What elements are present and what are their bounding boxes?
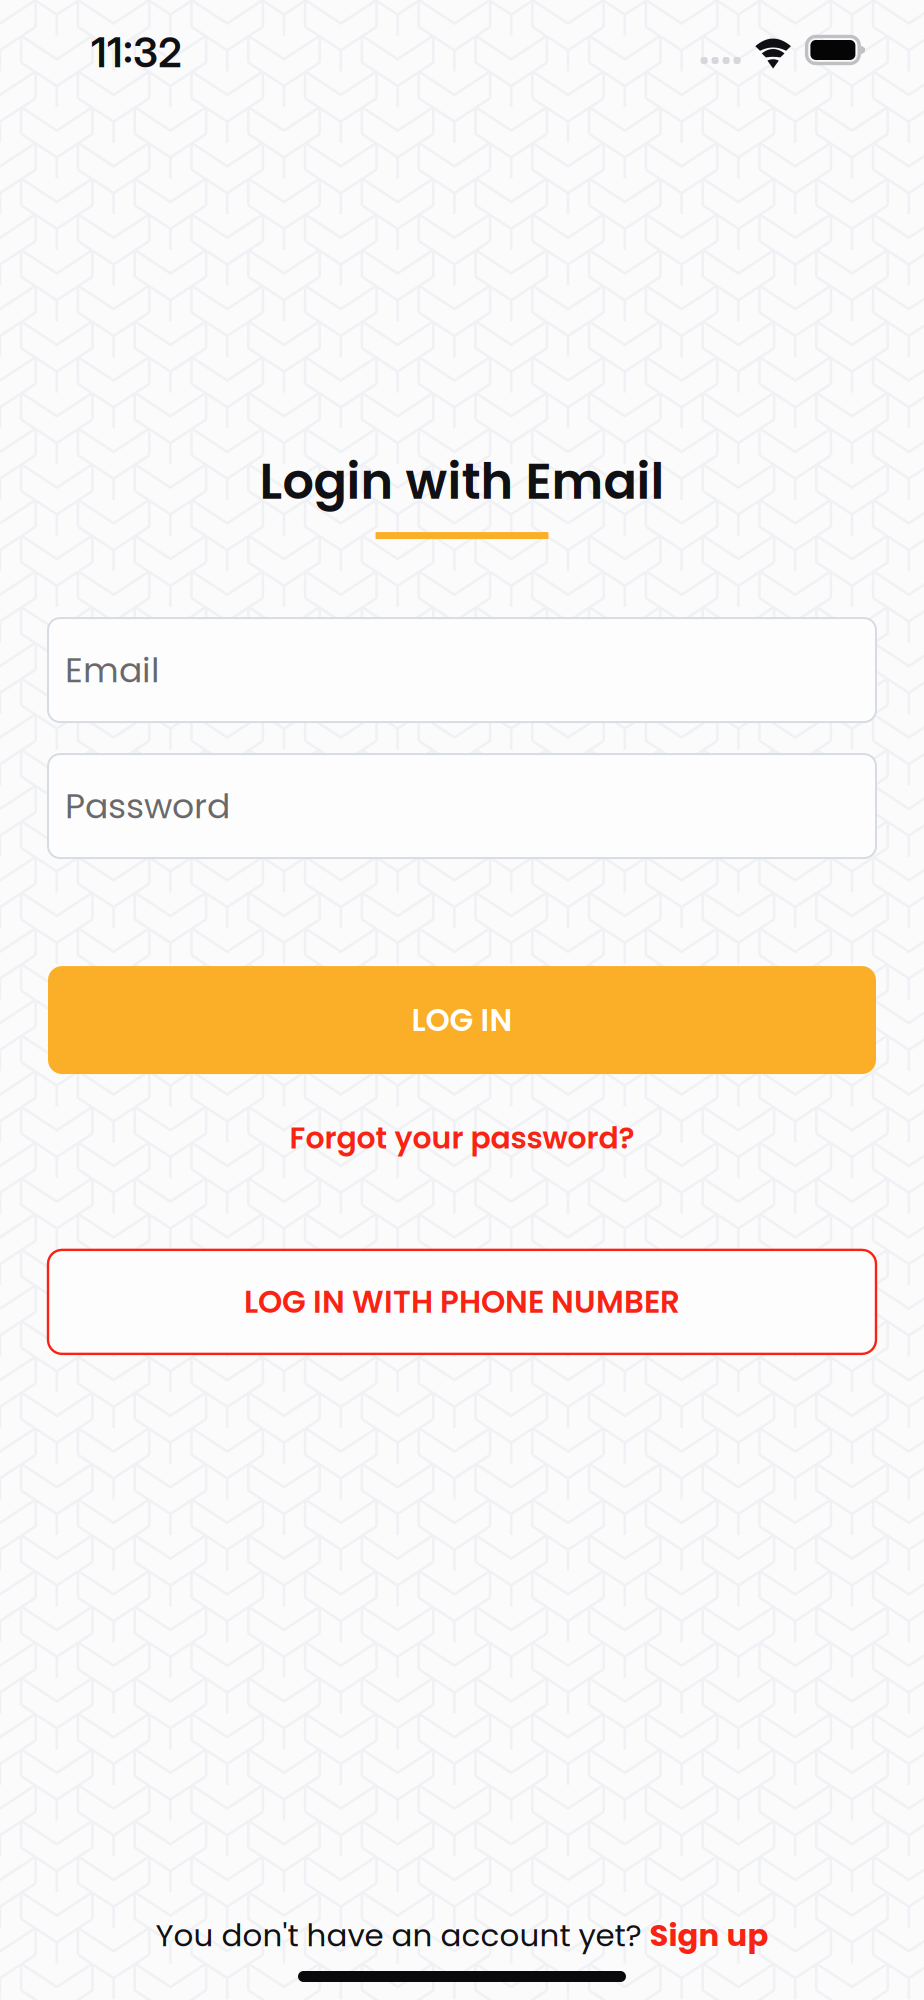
staticText: You don't have an account yet? [155,1914,641,1957]
button[interactable]: LOG IN [48,966,876,1074]
staticText: Login with Email [259,447,664,516]
staticText: Password [65,782,230,830]
staticText: LOG IN WITH PHONE NUMBER [244,1280,680,1323]
staticText: 11:32 [91,28,182,77]
button[interactable]: LOG IN WITH PHONE NUMBER [48,1250,876,1354]
staticText: Sign up [649,1914,768,1957]
staticText: LOG IN [411,998,512,1042]
button[interactable]: Sign up [649,1914,768,1957]
button[interactable]: Email [48,618,876,722]
button[interactable]: Password [48,754,876,858]
button[interactable]: Forgot your password? [289,1117,634,1159]
staticText: Forgot your password? [289,1117,634,1159]
staticText: Email [65,646,160,694]
